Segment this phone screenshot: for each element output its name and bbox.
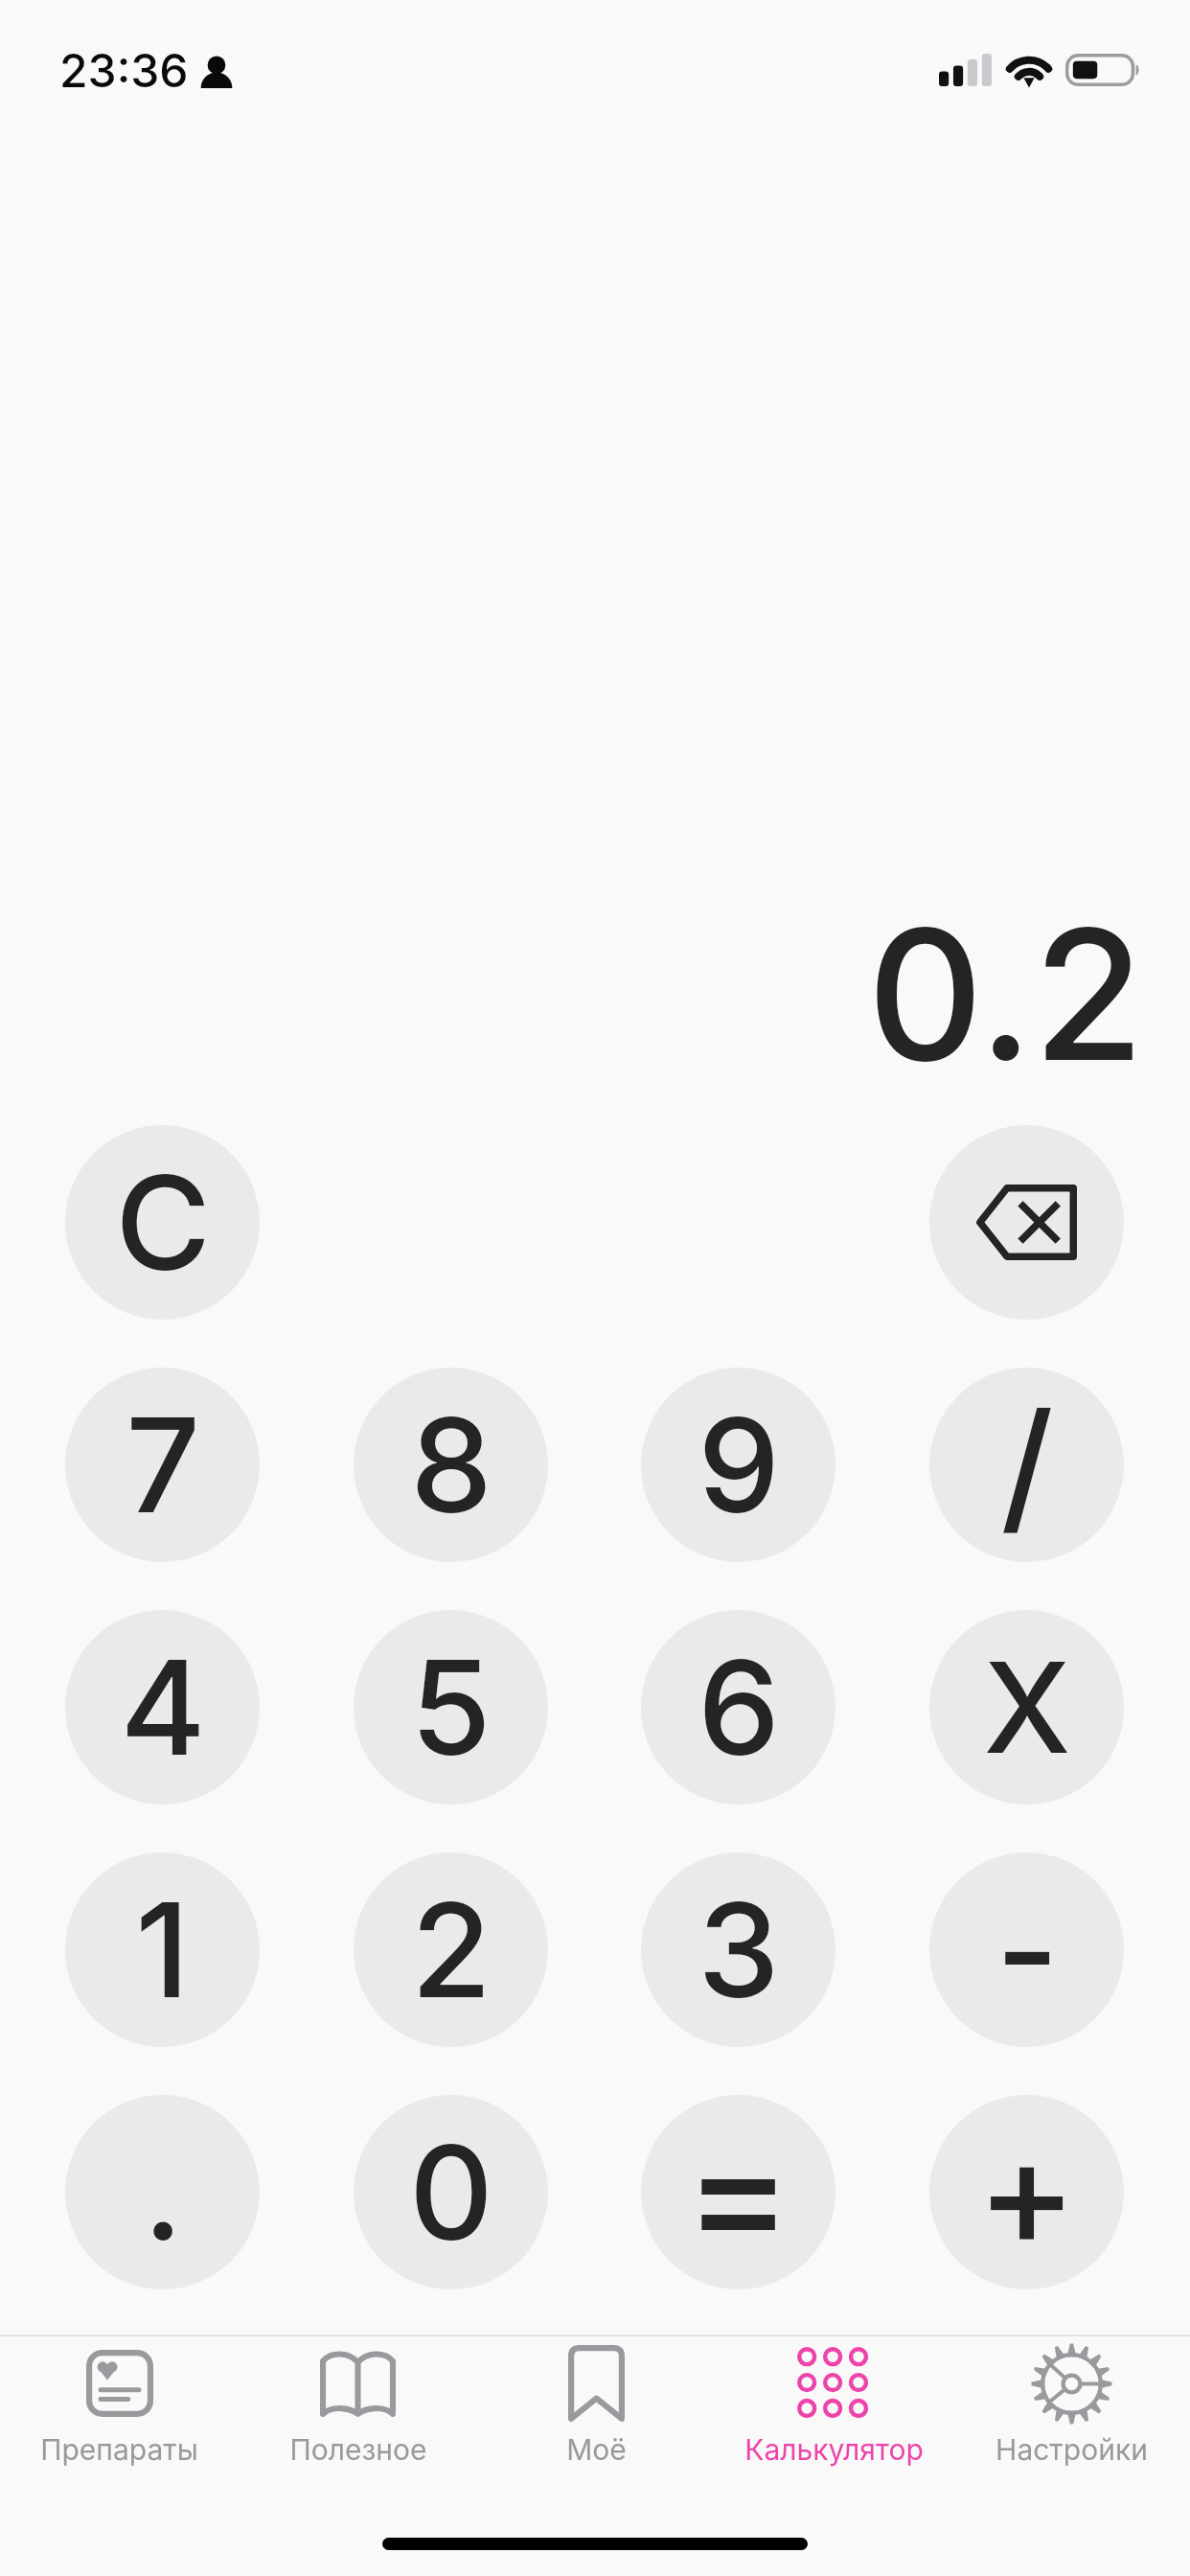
staticText: 9 bbox=[698, 1386, 780, 1544]
staticText: - bbox=[995, 1868, 1059, 2033]
button[interactable]: Препараты bbox=[0, 2336, 239, 2419]
staticText: 23:36 bbox=[59, 42, 189, 98]
staticText: 0.2 bbox=[867, 885, 1145, 1103]
staticText: 5 bbox=[410, 1628, 492, 1786]
button[interactable]: X bbox=[929, 1610, 1124, 1805]
staticText: Калькулятор bbox=[744, 2432, 924, 2467]
button[interactable]: 4 bbox=[65, 1610, 260, 1805]
button[interactable]: = bbox=[641, 2095, 835, 2289]
button[interactable]: 1 bbox=[65, 1852, 260, 2047]
button[interactable]: 2 bbox=[354, 1852, 548, 2047]
staticText: 3 bbox=[698, 1871, 780, 2029]
button[interactable]: Моё bbox=[477, 2336, 715, 2419]
button[interactable]: / bbox=[929, 1368, 1124, 1562]
staticText: 2 bbox=[411, 1871, 492, 2029]
staticText: + bbox=[976, 2102, 1077, 2283]
staticText: C bbox=[115, 1143, 211, 1301]
button[interactable]: Backspace bbox=[929, 1125, 1124, 1320]
button[interactable]: 6 bbox=[641, 1610, 835, 1805]
button[interactable]: 0 bbox=[354, 2095, 548, 2289]
staticText: 1 bbox=[135, 1871, 190, 2029]
button[interactable]: 5 bbox=[354, 1610, 548, 1805]
staticText: Настройки bbox=[995, 2432, 1148, 2467]
staticText: 6 bbox=[698, 1628, 780, 1786]
staticText: / bbox=[1000, 1378, 1054, 1552]
staticText: 0 bbox=[409, 2113, 493, 2271]
button[interactable]: 8 bbox=[354, 1368, 548, 1562]
staticText: 8 bbox=[410, 1386, 492, 1544]
button[interactable]: - bbox=[929, 1852, 1124, 2047]
button[interactable]: C bbox=[65, 1125, 260, 1320]
button[interactable]: . bbox=[65, 2095, 260, 2289]
button[interactable]: + bbox=[929, 2095, 1124, 2289]
staticText: 4 bbox=[120, 1628, 206, 1786]
button[interactable]: 3 bbox=[641, 1852, 835, 2047]
button[interactable]: Настройки bbox=[952, 2336, 1190, 2419]
button[interactable]: Калькулятор bbox=[715, 2336, 952, 2419]
button[interactable]: 7 bbox=[65, 1368, 260, 1562]
staticText: = bbox=[684, 2095, 792, 2289]
staticText: Моё bbox=[566, 2432, 627, 2467]
staticText: X bbox=[983, 1632, 1071, 1782]
staticText: Препараты bbox=[40, 2432, 198, 2467]
staticText: Полезное bbox=[289, 2432, 427, 2467]
staticText: 7 bbox=[126, 1386, 200, 1544]
button[interactable]: 9 bbox=[641, 1368, 835, 1562]
button[interactable]: Полезное bbox=[239, 2336, 477, 2419]
staticText: . bbox=[143, 2113, 183, 2271]
